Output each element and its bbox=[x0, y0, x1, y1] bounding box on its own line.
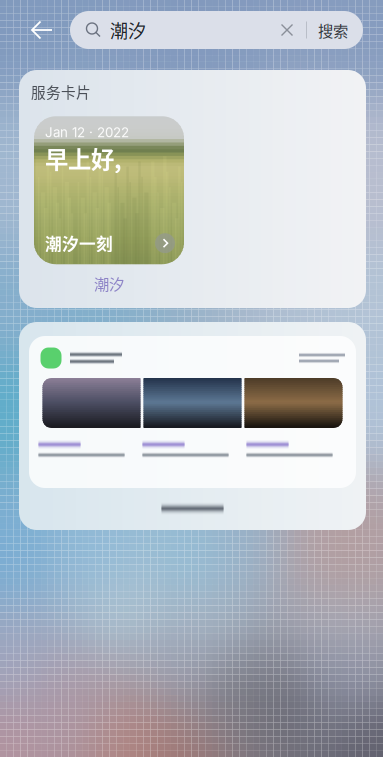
staticText: 潮汐一刻 bbox=[45, 231, 113, 255]
button[interactable]: 搜索 bbox=[313, 15, 353, 45]
staticText: 早上好, bbox=[45, 141, 122, 175]
staticText: 潮汐 bbox=[94, 272, 124, 294]
staticText: 服务卡片 bbox=[31, 81, 91, 102]
staticText: 搜索 bbox=[318, 19, 348, 41]
button[interactable]: Back bbox=[22, 10, 62, 50]
button[interactable]: Clear bbox=[274, 15, 300, 45]
button[interactable]: Jan 12 · 2022 bbox=[34, 116, 184, 294]
staticText: 潮汐 bbox=[110, 17, 146, 43]
staticText: Jan 12 · 2022 bbox=[45, 124, 129, 140]
